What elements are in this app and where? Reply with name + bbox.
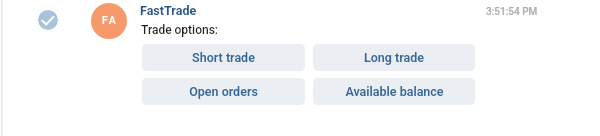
staticText: Long trade	[364, 50, 424, 65]
button[interactable]: FA	[91, 3, 127, 39]
button[interactable]: Long trade	[313, 44, 475, 71]
staticText: 3:51:54 PM	[486, 6, 538, 18]
staticText: Open orders	[189, 84, 258, 99]
staticText: Trade options:	[141, 23, 219, 37]
staticText: Short trade	[192, 50, 255, 65]
staticText: Available balance	[345, 84, 444, 99]
staticText: FastTrade	[140, 3, 197, 18]
button[interactable]: Open orders	[142, 78, 305, 105]
button[interactable]: Message read	[38, 10, 58, 30]
staticText: FA	[102, 14, 118, 26]
button[interactable]: Short trade	[142, 44, 305, 71]
button[interactable]: Available balance	[313, 78, 475, 105]
